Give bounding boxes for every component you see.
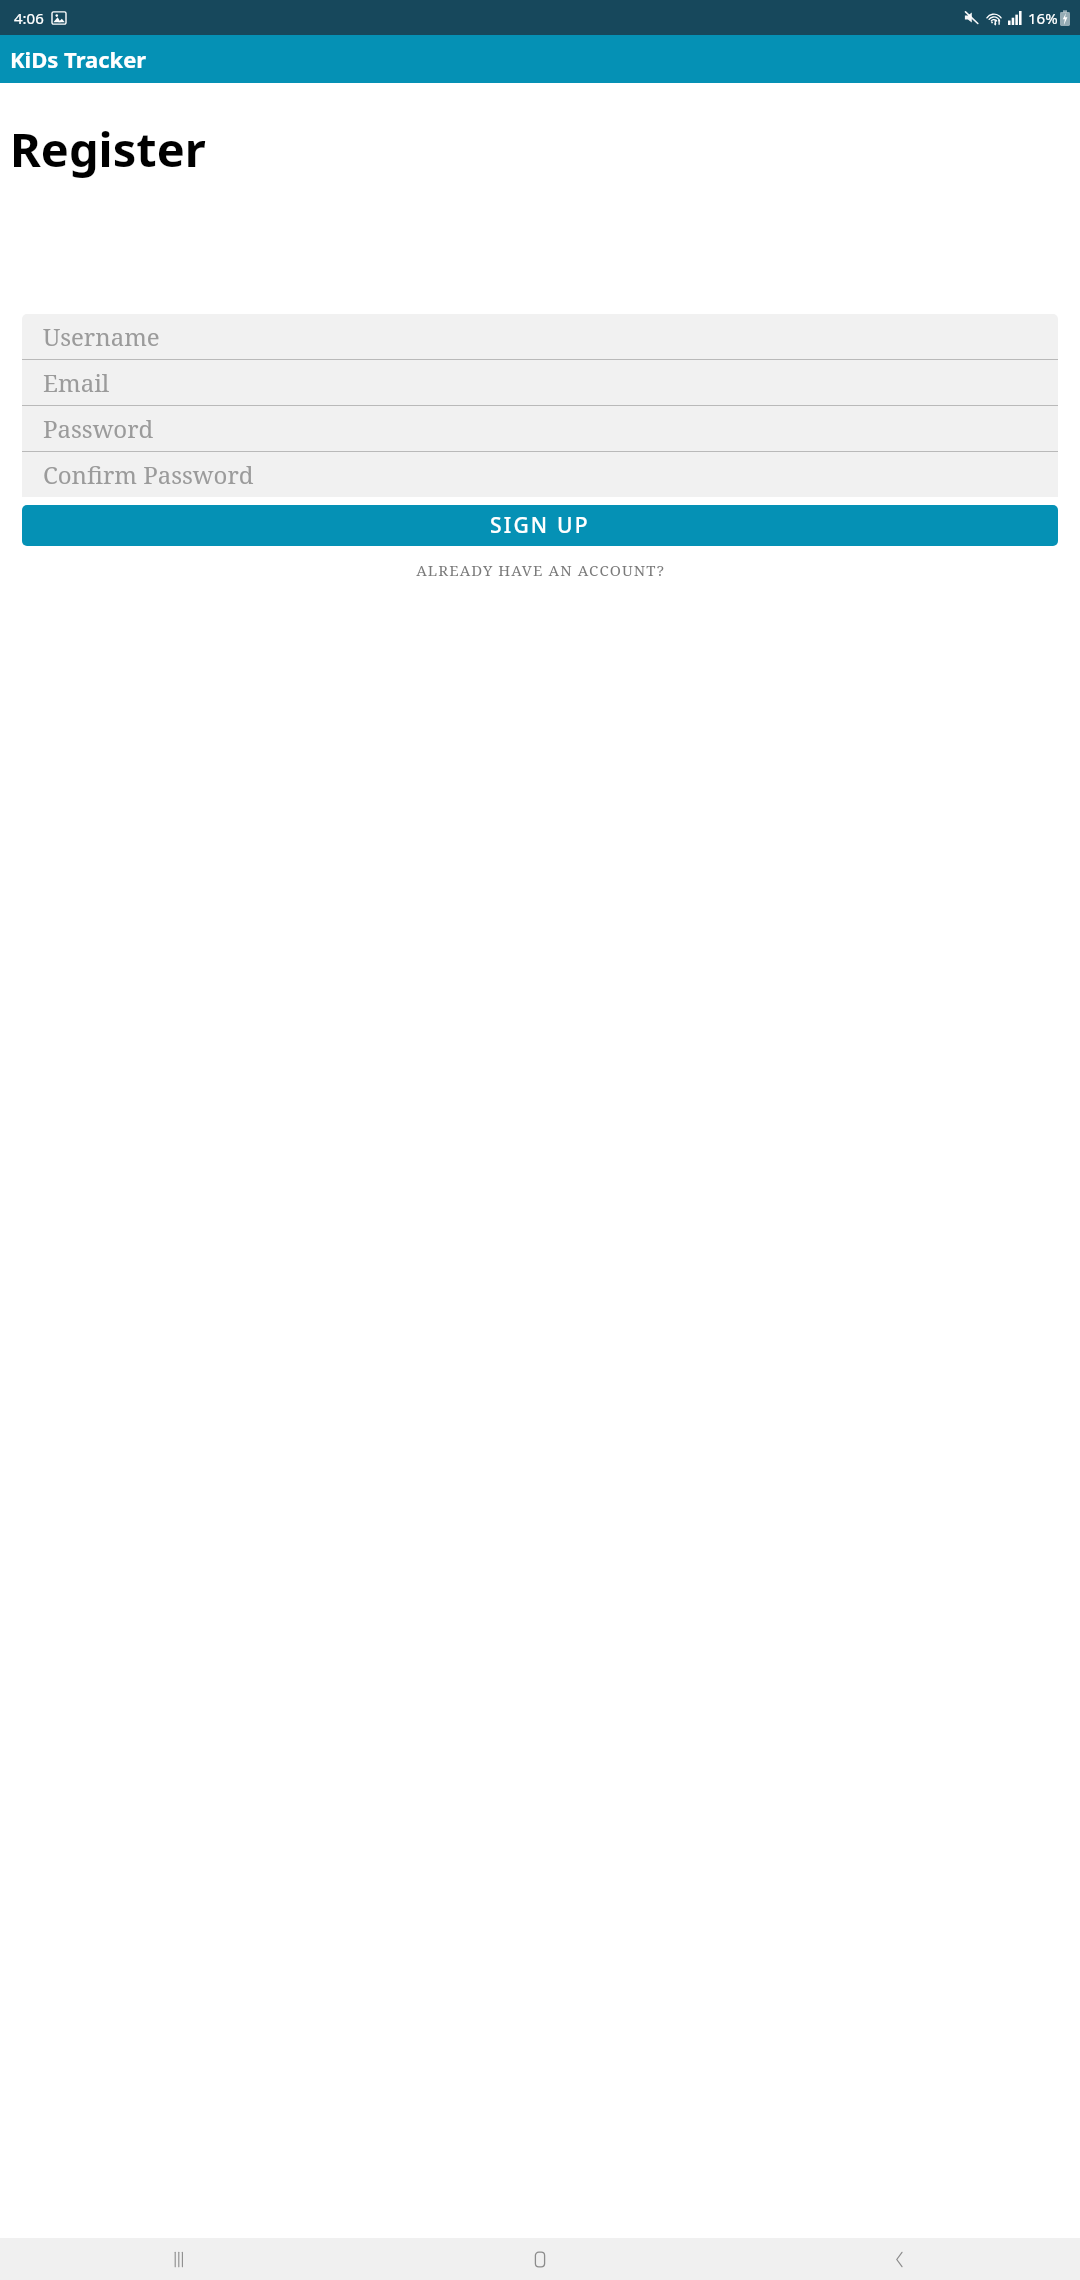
staticText: Username — [43, 320, 160, 353]
staticText: Password — [43, 412, 154, 445]
button[interactable]: Confirm Password — [22, 452, 1058, 497]
staticText: 16% — [1028, 8, 1058, 28]
button[interactable]: Home — [360, 2238, 720, 2280]
button[interactable]: Email — [22, 360, 1058, 405]
button[interactable]: Password — [22, 406, 1058, 451]
button[interactable]: Recent apps — [0, 2238, 360, 2280]
staticText: SIGN UP — [490, 511, 590, 540]
button[interactable]: SIGN UP — [22, 505, 1058, 546]
staticText: Email — [43, 366, 110, 399]
staticText: 4:06 — [14, 8, 44, 28]
staticText: Register — [10, 117, 206, 181]
button[interactable]: ALREADY HAVE AN ACCOUNT? — [406, 555, 675, 585]
staticText: KiDs Tracker — [10, 44, 147, 74]
staticText: Confirm Password — [43, 458, 254, 491]
button[interactable]: Username — [22, 314, 1058, 359]
button[interactable]: Back — [720, 2238, 1080, 2280]
